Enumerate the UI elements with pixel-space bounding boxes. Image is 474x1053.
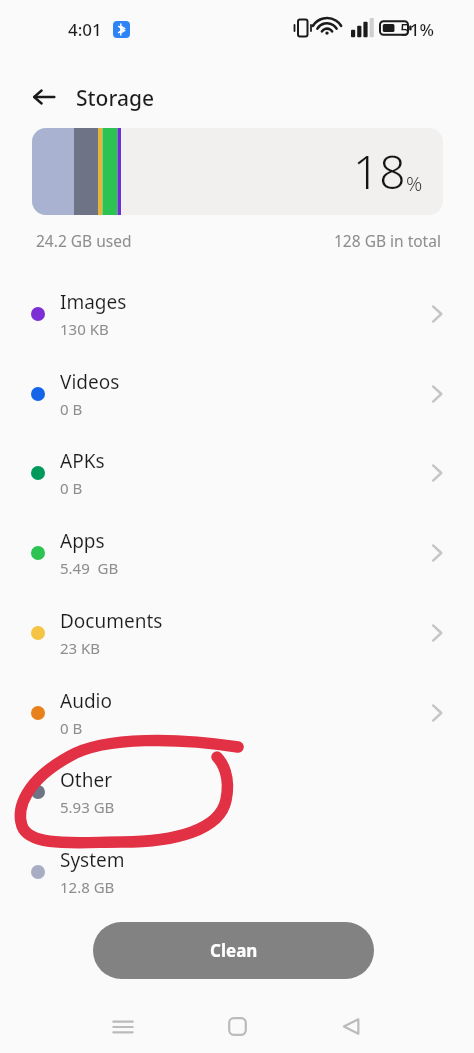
button[interactable]: Images xyxy=(0,274,474,353)
staticText: Videos xyxy=(60,369,120,395)
button[interactable]: System xyxy=(0,832,474,911)
button[interactable]: Clean xyxy=(93,922,374,979)
staticText: System xyxy=(60,847,125,873)
staticText: Other xyxy=(60,767,113,793)
staticText: Images xyxy=(60,289,127,315)
staticText: Apps xyxy=(60,528,105,554)
button[interactable]: Videos xyxy=(0,354,474,433)
staticText: 23 KB xyxy=(60,638,101,658)
staticText: 51% xyxy=(400,18,434,41)
staticText: 5.93 GB xyxy=(60,797,115,817)
staticText: Documents xyxy=(60,608,163,634)
button[interactable]: Home xyxy=(213,1000,261,1053)
button[interactable]: Documents xyxy=(0,593,474,672)
staticText: APKs xyxy=(60,448,105,474)
staticText: 130 KB xyxy=(60,319,109,339)
staticText: 24.2 GB used xyxy=(36,230,132,251)
button[interactable]: APKs xyxy=(0,433,474,512)
staticText: 18 xyxy=(353,140,406,203)
button[interactable]: Audio xyxy=(0,673,474,752)
staticText: 0 B xyxy=(60,399,83,419)
button[interactable]: Recents xyxy=(99,1000,147,1053)
button[interactable]: Other xyxy=(0,752,474,831)
staticText: 4:01 xyxy=(68,18,102,41)
staticText: Audio xyxy=(60,688,112,714)
staticText: 5.49 GB xyxy=(60,558,119,578)
staticText: 0 B xyxy=(60,718,83,738)
staticText: % xyxy=(406,170,423,197)
staticText: 128 GB in total xyxy=(334,230,441,251)
staticText: 0 B xyxy=(60,478,83,498)
staticText: 12.8 GB xyxy=(60,877,115,897)
staticText: Clean xyxy=(210,939,258,962)
button[interactable]: Back xyxy=(327,1000,375,1053)
button[interactable]: Back xyxy=(22,75,66,119)
button[interactable]: Apps xyxy=(0,513,474,592)
staticText: Storage xyxy=(76,84,154,113)
